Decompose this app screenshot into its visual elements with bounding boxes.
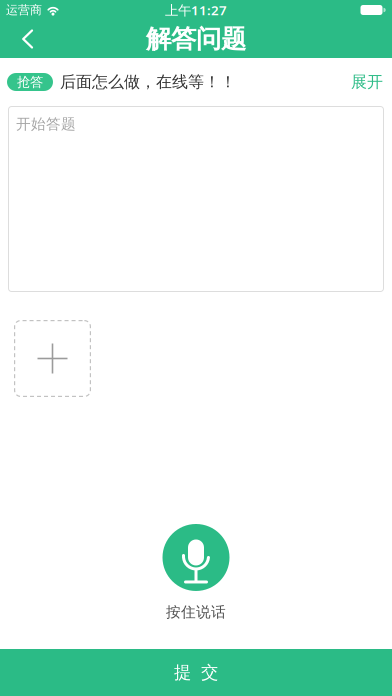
button[interactable]: 返回: [0, 20, 53, 58]
staticText: 解答问题: [146, 23, 246, 54]
staticText: 抢答: [17, 74, 43, 90]
button[interactable]: 展开: [351, 72, 392, 92]
staticText: 开始答题: [16, 115, 76, 133]
staticText: 提 交: [174, 662, 218, 683]
button[interactable]: 提 交: [0, 649, 392, 696]
staticText: 上午11:27: [165, 1, 227, 19]
button[interactable]: 按住说话: [162, 524, 229, 591]
staticText: 运营商: [6, 3, 42, 17]
staticText: 展开: [351, 72, 383, 92]
staticText: 按住说话: [166, 603, 226, 621]
button[interactable]: 添加图片: [14, 320, 91, 397]
staticText: 后面怎么做，在线等！！: [60, 72, 236, 92]
